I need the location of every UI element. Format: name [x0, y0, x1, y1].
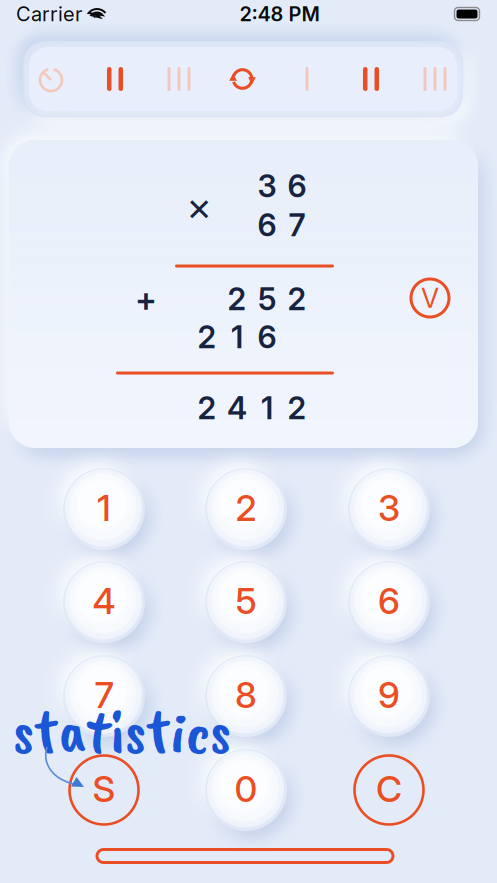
staticText: +	[135, 279, 157, 319]
staticText: 2:48 PM	[239, 2, 319, 26]
staticText: 3	[257, 167, 276, 204]
staticText: 9	[378, 673, 400, 717]
button[interactable]: Three digit operand	[147, 47, 211, 111]
staticText: 8	[235, 673, 257, 717]
button[interactable]: Verify	[408, 276, 452, 320]
button[interactable]: 7	[45, 637, 163, 755]
staticText: Carrier	[16, 2, 82, 26]
staticText: 1	[97, 486, 111, 530]
button[interactable]: 0	[187, 731, 305, 849]
button[interactable]: One digit multiplier	[275, 47, 339, 111]
staticText: 4	[92, 579, 115, 623]
staticText: 2	[287, 280, 306, 317]
staticText: 7	[94, 673, 113, 717]
staticText: 1	[231, 318, 243, 355]
staticText: 6	[257, 206, 276, 243]
staticText: 0	[234, 767, 257, 811]
button[interactable]: 3	[330, 450, 448, 568]
button[interactable]: Three digit multiplier	[403, 47, 467, 111]
button[interactable]: 1	[45, 450, 163, 568]
staticText: 6	[257, 318, 276, 355]
button[interactable]: C	[350, 751, 428, 829]
button[interactable]: 6	[330, 543, 448, 661]
button[interactable]: Swap operands	[211, 47, 275, 111]
staticText: 2	[197, 318, 216, 355]
staticText: 2	[235, 486, 256, 530]
button[interactable]: 5	[187, 543, 305, 661]
staticText: 5	[258, 280, 276, 317]
staticText: 3	[378, 486, 400, 530]
button[interactable]: 8	[187, 637, 305, 755]
staticText: 6	[378, 579, 400, 623]
staticText: 7	[288, 206, 305, 243]
staticText: V	[421, 282, 439, 314]
button[interactable]: Timer	[19, 47, 83, 111]
staticText: 4	[227, 389, 247, 426]
button[interactable]: Two digit operand	[83, 47, 147, 111]
staticText: 2	[197, 389, 216, 426]
button[interactable]: 9	[330, 637, 448, 755]
staticText: C	[376, 767, 402, 811]
button[interactable]: 2	[187, 450, 305, 568]
staticText: ×	[186, 182, 211, 230]
button[interactable]: Two digit multiplier	[339, 47, 403, 111]
staticText: 6	[287, 167, 306, 204]
staticText: S	[92, 767, 115, 811]
staticText: 1	[261, 389, 273, 426]
button[interactable]: 4	[45, 543, 163, 661]
staticText: statistics	[12, 691, 231, 771]
staticText: 2	[227, 280, 246, 317]
staticText: 2	[287, 389, 306, 426]
button[interactable]: S	[65, 751, 143, 829]
staticText: 5	[235, 579, 256, 623]
